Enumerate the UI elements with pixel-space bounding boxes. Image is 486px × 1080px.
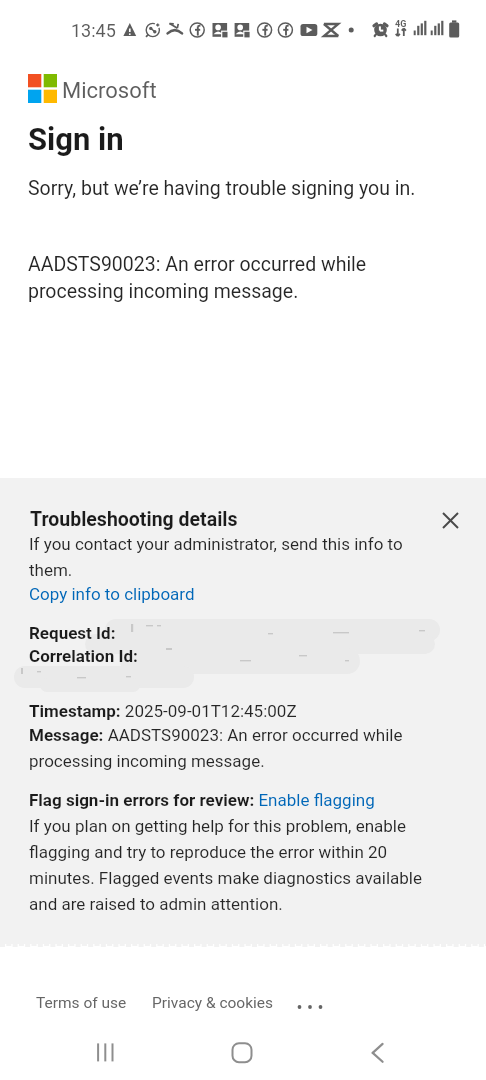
- staticText: Sign in: [28, 121, 124, 157]
- staticText: Copy info to clipboard: [29, 584, 195, 604]
- staticText: 4G: [395, 19, 407, 30]
- button[interactable]: More options: [294, 991, 326, 1023]
- button[interactable]: Back: [348, 1028, 406, 1080]
- staticText: Flag sign-in errors for review: Enable f…: [29, 790, 375, 810]
- staticText: If you plan on getting help for this pro…: [29, 816, 423, 914]
- staticText: 13:45: [71, 20, 116, 41]
- staticText: AADSTS90023: An error occurred while pro…: [28, 253, 367, 303]
- button[interactable]: Copy info to clipboard: [29, 584, 195, 604]
- staticText: Timestamp: 2025-09-01T12:45:00Z: [29, 701, 297, 721]
- staticText: Privacy & cookies: [152, 994, 274, 1012]
- staticText: Request Id:: [29, 623, 120, 643]
- button[interactable]: Recent apps: [76, 1028, 134, 1080]
- staticText: Troubleshooting details: [30, 508, 238, 531]
- button[interactable]: Privacy & cookies: [152, 994, 274, 1012]
- button[interactable]: Home: [212, 1028, 270, 1080]
- staticText: Message: AADSTS90023: An error occurred …: [29, 725, 403, 771]
- staticText: Terms of use: [36, 994, 127, 1012]
- staticText: Correlation Id:: [29, 646, 143, 666]
- staticText: Sorry, but we’re having trouble signing …: [28, 177, 416, 200]
- button[interactable]: Terms of use: [36, 994, 127, 1012]
- staticText: If you contact your administrator, send …: [29, 534, 403, 580]
- staticText: Microsoft: [62, 78, 157, 104]
- button[interactable]: Close troubleshooting details: [434, 504, 466, 536]
